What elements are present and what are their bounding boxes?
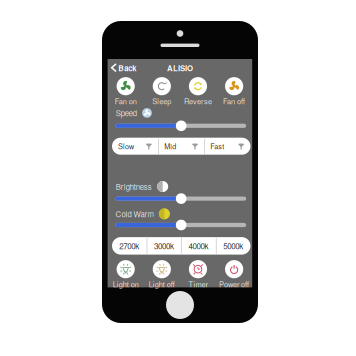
staticText: 4000k (189, 240, 209, 252)
staticText: Brightness (116, 181, 152, 192)
button[interactable] (176, 220, 186, 230)
button[interactable]: 5000k (216, 237, 250, 255)
staticText: Cold Warm (115, 208, 153, 219)
staticText: Timer (188, 279, 207, 289)
button[interactable]: Fan off (223, 77, 245, 106)
staticText: 3000k (154, 240, 174, 252)
staticText: 5000k (223, 240, 243, 252)
button[interactable]: Slow (112, 138, 158, 155)
button[interactable]: Power off (219, 260, 249, 289)
button[interactable]: Mid (158, 138, 204, 155)
button[interactable]: 2700k (112, 237, 147, 255)
staticText: Fan off (223, 96, 245, 106)
button[interactable]: 3000k (147, 237, 181, 255)
staticText: Back (118, 63, 136, 74)
staticText: Slow (118, 141, 134, 151)
staticText: ALISIO (167, 63, 193, 74)
button[interactable] (176, 120, 186, 131)
staticText: Fast (210, 141, 224, 151)
staticText: Light off (149, 279, 175, 289)
button[interactable]: Fan on (115, 77, 137, 106)
staticText: Speed (116, 107, 137, 118)
staticText: Reverse (184, 96, 212, 106)
button[interactable]: 4000k (181, 237, 216, 255)
staticText: Light on (113, 279, 139, 289)
button[interactable]: Light on (113, 260, 139, 289)
button[interactable]: Timer (188, 260, 207, 289)
staticText: Fan on (115, 96, 137, 106)
staticText: 2700k (119, 240, 139, 252)
button[interactable]: Light off (149, 260, 175, 289)
button[interactable]: Sleep (152, 77, 171, 106)
staticText: Power off (219, 279, 249, 289)
button[interactable]: Reverse (184, 77, 212, 106)
button[interactable] (176, 193, 186, 204)
staticText: Mid (164, 141, 176, 151)
button[interactable]: Fast (204, 138, 250, 155)
staticText: Sleep (152, 96, 171, 106)
button[interactable]: Back (108, 61, 152, 74)
